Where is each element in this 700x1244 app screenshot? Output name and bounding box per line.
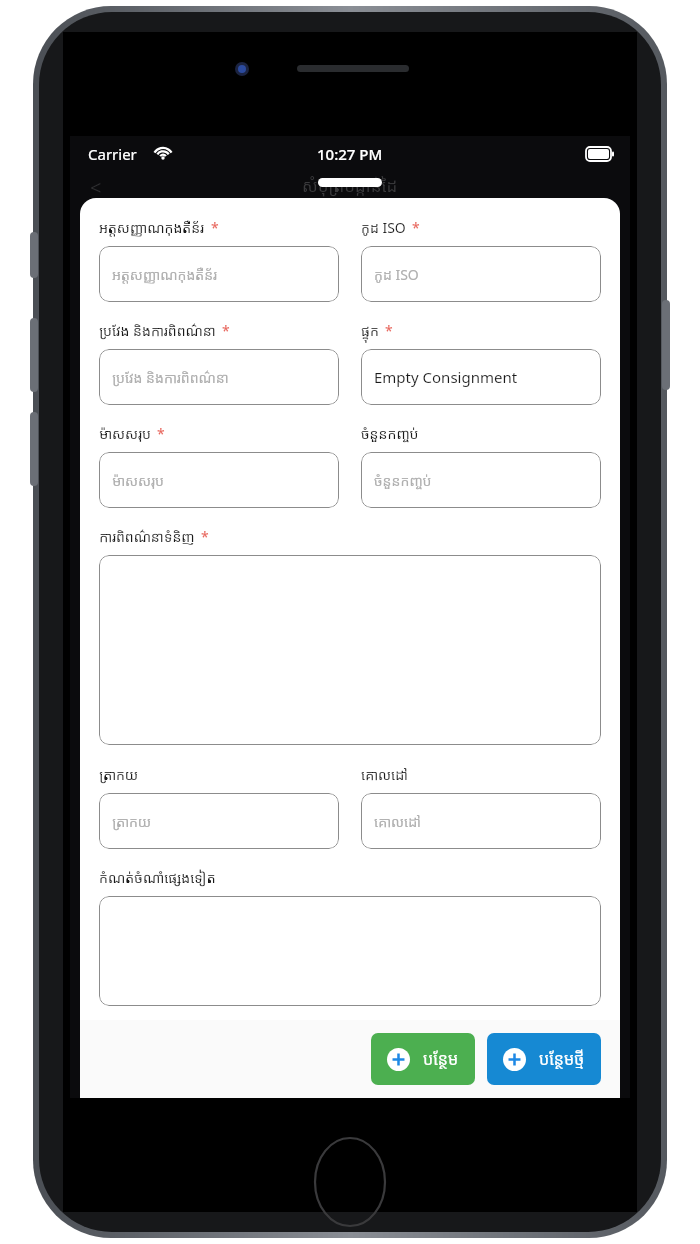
staticText: ប្រវែង និងការពិពណ៌នា bbox=[99, 321, 216, 340]
button[interactable]: កូដ ISO bbox=[361, 246, 601, 302]
staticText: ម៉ាសសរុប bbox=[112, 471, 164, 490]
staticText: Empty Consignment bbox=[374, 367, 518, 387]
staticText: 10:27 PM bbox=[317, 144, 383, 164]
staticText: ចំនួនកញ្ចប់ bbox=[361, 424, 419, 443]
staticText: គោលដៅ bbox=[374, 812, 421, 831]
staticText: ប្រវែង និងការពិពណ៌នា bbox=[112, 368, 229, 387]
staticText: កូដ ISO bbox=[374, 265, 419, 284]
staticText: កូដ ISO bbox=[361, 218, 406, 237]
button[interactable]: ចំនួនកញ្ចប់ bbox=[361, 452, 601, 508]
staticText: * bbox=[385, 321, 393, 340]
staticText: ត្រាកយ bbox=[112, 812, 152, 831]
button[interactable] bbox=[99, 555, 601, 745]
staticText: * bbox=[222, 321, 230, 340]
button[interactable] bbox=[99, 896, 601, 1006]
button[interactable]: ប្រវែង និងការពិពណ៌នា bbox=[99, 349, 339, 405]
button[interactable]: ត្រាកយ bbox=[99, 793, 339, 849]
staticText: < bbox=[90, 174, 102, 201]
staticText: Carrier bbox=[88, 144, 137, 164]
button[interactable]: Add bbox=[371, 1033, 475, 1085]
staticText: ម៉ាសសរុប bbox=[99, 424, 151, 443]
staticText: * bbox=[157, 424, 165, 443]
staticText: * bbox=[201, 527, 209, 546]
button[interactable]: ម៉ាសសរុប bbox=[99, 452, 339, 508]
staticText: សំបុត្របង្កាន់ដៃ bbox=[302, 174, 398, 197]
button[interactable]: គោលដៅ bbox=[361, 793, 601, 849]
staticText: * bbox=[211, 218, 219, 237]
button[interactable]: Empty Consignment bbox=[361, 349, 601, 405]
staticText: ចំនួនកញ្ចប់ bbox=[374, 471, 432, 490]
staticText: កំណត់ចំណាំផ្សេងទៀត bbox=[99, 868, 216, 887]
staticText: ផ្ទុក bbox=[361, 321, 379, 340]
staticText: ការពិពណ៌នាទំនិញ bbox=[99, 527, 195, 546]
button[interactable]: អត្តសញ្ញាណកុងតឺន័រ bbox=[99, 246, 339, 302]
staticText: អត្តសញ្ញាណកុងតឺន័រ bbox=[99, 218, 205, 237]
staticText: បន្ថែម bbox=[423, 1048, 459, 1070]
staticText: * bbox=[412, 218, 420, 237]
staticText: បន្ថែមថ្មី bbox=[539, 1048, 585, 1070]
staticText: គោលដៅ bbox=[361, 765, 408, 784]
staticText: ត្រាកយ bbox=[99, 765, 139, 784]
staticText: អត្តសញ្ញាណកុងតឺន័រ bbox=[112, 265, 218, 284]
button[interactable]: Add new bbox=[487, 1033, 601, 1085]
